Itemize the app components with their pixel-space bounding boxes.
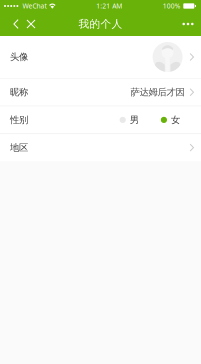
button[interactable]: 性别 (0, 106, 201, 133)
staticText: 性别 (10, 114, 28, 126)
button[interactable]: 地区 (0, 134, 201, 161)
staticText: 昵称 (10, 86, 28, 98)
button[interactable]: Back (9, 12, 23, 36)
staticText: 男 (130, 114, 139, 126)
button[interactable]: Close (23, 12, 39, 36)
staticText: 女 (171, 114, 180, 126)
button[interactable]: More (178, 12, 198, 36)
button[interactable]: 头像 (0, 36, 201, 78)
staticText: 头像 (10, 51, 28, 63)
staticText: 1:21 AM (96, 2, 122, 10)
staticText: 我的个人 (78, 17, 122, 30)
staticText: 100% (163, 2, 181, 10)
staticText: 萨达姆后才因 (131, 86, 185, 98)
staticText: WeChat (22, 2, 46, 10)
button[interactable]: 昵称 (0, 79, 201, 106)
staticText: 地区 (10, 142, 28, 153)
